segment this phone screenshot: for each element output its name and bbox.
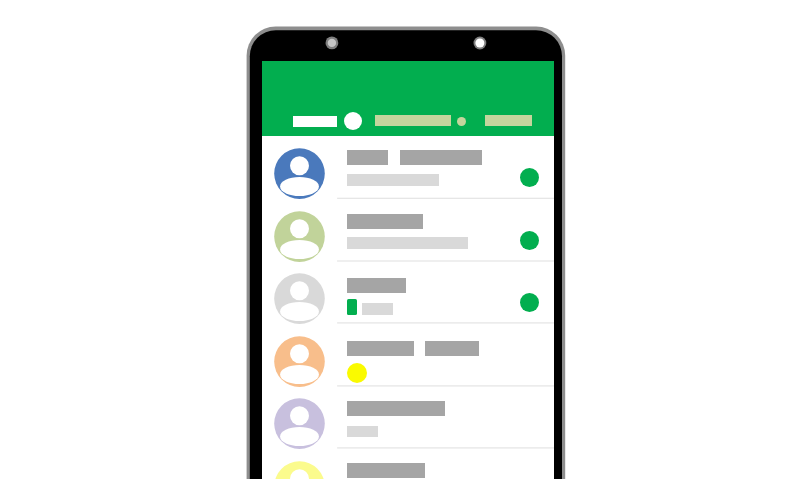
button[interactable] — [262, 136, 554, 199]
button[interactable] — [262, 449, 554, 479]
button[interactable] — [262, 261, 554, 324]
button[interactable] — [262, 324, 554, 387]
button[interactable] — [262, 386, 554, 449]
button[interactable]: More options — [457, 117, 466, 126]
button[interactable] — [262, 199, 554, 262]
button[interactable]: Profile — [344, 112, 362, 130]
